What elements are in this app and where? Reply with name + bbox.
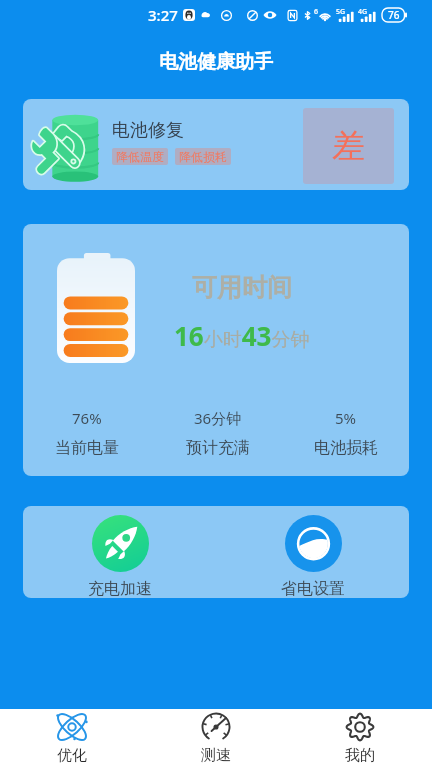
staticText: 76: [388, 8, 400, 22]
staticText: 当前电量: [55, 438, 119, 458]
staticText: 5G: [336, 7, 346, 17]
staticText: 电池损耗: [314, 438, 378, 458]
staticText: 充电加速: [88, 579, 152, 598]
button[interactable]: 优化: [0, 709, 144, 768]
button[interactable]: 我的: [288, 709, 432, 768]
staticText: 76%: [72, 408, 102, 428]
button[interactable]: 充电加速: [84, 513, 156, 598]
staticText: 36分钟: [194, 408, 242, 428]
staticText: 省电设置: [281, 579, 345, 598]
staticText: 降低损耗: [179, 149, 227, 164]
staticText: 差: [332, 125, 365, 167]
staticText: 3:27: [148, 5, 178, 25]
staticText: 电池健康助手: [159, 50, 273, 74]
staticText: 测速: [201, 746, 231, 765]
button[interactable]: 省电设置: [277, 513, 349, 598]
staticText: 降低温度: [116, 149, 164, 164]
staticText: 我的: [345, 746, 375, 765]
staticText: 16小时43分钟: [174, 318, 310, 353]
staticText: 电池修复: [112, 119, 184, 142]
button[interactable]: 电池修复: [23, 99, 409, 190]
staticText: 预计充满: [186, 438, 250, 458]
staticText: 可用时间: [192, 272, 292, 303]
staticText: 4G: [358, 7, 368, 17]
staticText: 优化: [57, 746, 87, 765]
staticText: 6: [314, 7, 319, 17]
button[interactable]: 测速: [144, 709, 288, 768]
staticText: 5%: [335, 408, 357, 428]
